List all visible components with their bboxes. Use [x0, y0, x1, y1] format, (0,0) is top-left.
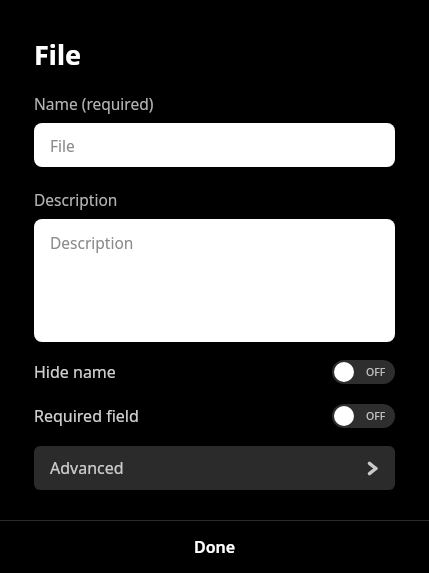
button[interactable]: Description	[34, 219, 395, 342]
staticText: Advanced	[50, 457, 124, 479]
staticText: Required field	[34, 405, 139, 427]
button[interactable]: Hide name	[34, 359, 395, 385]
staticText: Hide name	[34, 361, 116, 383]
button[interactable]: Done	[0, 521, 429, 573]
staticText: File	[50, 135, 75, 156]
button[interactable]: File	[34, 123, 395, 167]
staticText: OFF	[366, 409, 386, 423]
staticText: Done	[194, 536, 236, 558]
staticText: Description	[50, 232, 134, 253]
staticText: File	[34, 36, 82, 73]
other: Required field toggle, off	[332, 404, 395, 428]
staticText: Description	[34, 189, 118, 210]
other: Hide name toggle, off	[332, 360, 395, 384]
button[interactable]: Advanced	[34, 446, 395, 490]
staticText: OFF	[366, 365, 386, 379]
staticText: Name (required)	[34, 93, 154, 114]
button[interactable]: Required field	[34, 403, 395, 429]
